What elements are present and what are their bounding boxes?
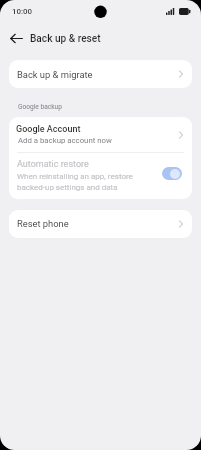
staticText: Automatic restore (17, 159, 89, 170)
staticText: Add a backup account now (18, 136, 112, 145)
button[interactable]: Automatic restore toggle (162, 167, 182, 180)
staticText: Google backup (18, 103, 62, 111)
staticText: Google Account (16, 124, 81, 135)
staticText: Back up & reset (30, 33, 101, 45)
staticText: 10:00 (12, 7, 33, 16)
staticText: Back up & migrate (17, 69, 93, 80)
staticText: Reset phone (17, 218, 69, 229)
button[interactable]: Google Account (9, 117, 192, 152)
staticText: When reinstalling an app, restore backed… (17, 172, 145, 192)
button[interactable]: Reset phone (9, 210, 192, 238)
button[interactable]: Back (4, 26, 28, 50)
button[interactable]: Back up & migrate (9, 60, 192, 88)
button[interactable]: Automatic restore (9, 153, 192, 199)
